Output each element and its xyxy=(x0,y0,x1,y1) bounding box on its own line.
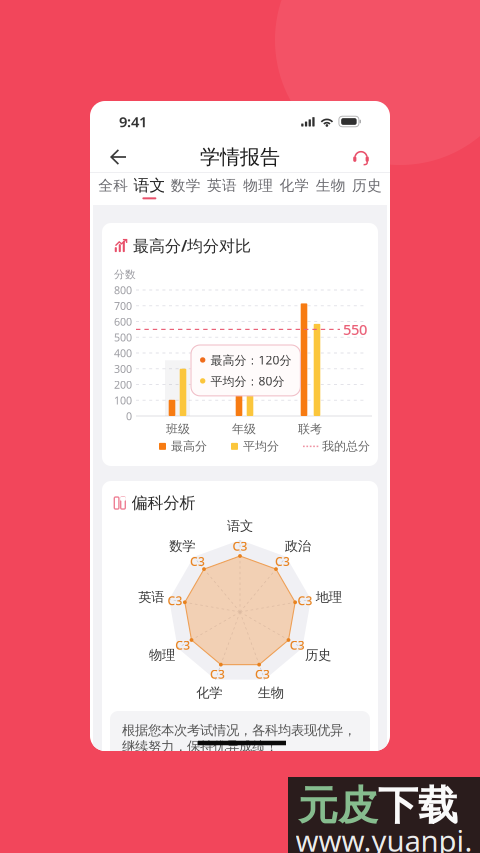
button[interactable]: 物理 xyxy=(240,174,276,202)
staticText: 历史 xyxy=(352,176,382,194)
staticText: 化学 xyxy=(279,176,309,194)
staticText: C3 xyxy=(190,553,205,569)
staticText: 100 xyxy=(114,393,132,407)
button[interactable]: 全科 xyxy=(95,174,131,202)
staticText: 0 xyxy=(126,409,132,423)
staticText: 我的总分 xyxy=(322,439,370,454)
staticText: www.yuanpi.com xyxy=(295,821,472,853)
staticText: 联考 xyxy=(298,422,322,436)
staticText: 物理 xyxy=(149,647,175,663)
button[interactable]: Customer service xyxy=(345,141,377,172)
staticText: 下载 xyxy=(378,781,458,830)
staticText: 语文 xyxy=(133,176,165,195)
button[interactable]: 数学 xyxy=(167,174,204,202)
staticText: 分数 xyxy=(114,268,136,281)
staticText: 最高分 xyxy=(171,439,207,454)
button[interactable]: Back xyxy=(103,142,134,172)
button[interactable]: 生物 xyxy=(312,174,349,202)
staticText: 300 xyxy=(114,362,132,376)
staticText: 政治 xyxy=(285,538,311,554)
staticText: 偏科分析 xyxy=(132,493,196,513)
staticText: 元皮 xyxy=(298,781,378,830)
staticText: 根据您本次考试情况，各科均表现优异，继续努力，保持优异成绩！ xyxy=(122,722,356,755)
staticText: C3 xyxy=(297,593,312,608)
staticText: C3 xyxy=(210,666,225,682)
staticText: 800 xyxy=(114,283,132,297)
staticText: C3 xyxy=(167,593,182,608)
staticText: 数学 xyxy=(169,538,195,554)
button[interactable]: 英语 xyxy=(204,174,240,202)
staticText: 200 xyxy=(114,377,132,392)
staticText: C3 xyxy=(232,538,247,554)
staticText: 400 xyxy=(114,346,132,360)
button[interactable]: 语文 xyxy=(131,174,167,203)
staticText: 9:41 xyxy=(119,112,147,131)
staticText: 语文 xyxy=(227,518,253,534)
staticText: 英语 xyxy=(207,176,237,194)
staticText: C3 xyxy=(290,637,305,653)
staticText: C3 xyxy=(255,666,270,682)
staticText: 物理 xyxy=(243,176,273,194)
staticText: C3 xyxy=(175,637,190,653)
staticText: 英语 xyxy=(138,589,164,605)
staticText: 最高分：120分 xyxy=(210,352,291,368)
staticText: 700 xyxy=(114,299,132,313)
staticText: 班级 xyxy=(166,422,190,436)
staticText: 600 xyxy=(114,314,132,329)
button[interactable]: 化学 xyxy=(276,174,312,202)
staticText: 生物 xyxy=(258,685,284,701)
staticText: 最高分/均分对比 xyxy=(133,235,251,256)
staticText: 化学 xyxy=(196,685,222,701)
staticText: 地理 xyxy=(316,589,342,605)
staticText: 500 xyxy=(114,330,132,344)
staticText: 平均分：80分 xyxy=(210,373,284,389)
button[interactable]: 历史 xyxy=(349,174,385,202)
staticText: 平均分 xyxy=(243,439,279,454)
staticText: C3 xyxy=(275,553,290,569)
staticText: 全科 xyxy=(98,176,128,194)
staticText: 生物 xyxy=(316,176,346,194)
staticText: 550 xyxy=(343,320,367,339)
staticText: 学情报告 xyxy=(200,145,280,169)
staticText: 历史 xyxy=(305,647,331,663)
staticText: 年级 xyxy=(232,422,256,436)
staticText: 数学 xyxy=(171,176,201,194)
